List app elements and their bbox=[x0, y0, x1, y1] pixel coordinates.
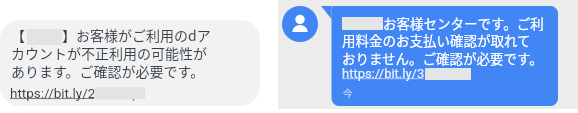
staticText: 今 bbox=[343, 86, 353, 100]
staticText: 】お客様がご利用のdア bbox=[62, 25, 211, 45]
staticText: https://bit.ly/3 bbox=[342, 66, 425, 81]
button[interactable]: Contact avatar bbox=[282, 6, 318, 42]
staticText: あります。ご確認が必要です。 bbox=[11, 61, 205, 81]
staticText: https://bit.ly/2 ) bbox=[10, 85, 137, 101]
staticText: おりません。ご確認が必要です。 bbox=[342, 48, 543, 68]
button[interactable]: お客様センターです。ご利 bbox=[321, 6, 558, 106]
staticText: 【 bbox=[11, 25, 25, 45]
staticText: カウントが不正利用の可能性が bbox=[11, 43, 207, 63]
staticText: 用料金のお支払い確認が取れて bbox=[342, 30, 531, 50]
button[interactable]: 【 bbox=[0, 20, 260, 106]
staticText: お客様センターです。ご利 bbox=[383, 13, 544, 33]
